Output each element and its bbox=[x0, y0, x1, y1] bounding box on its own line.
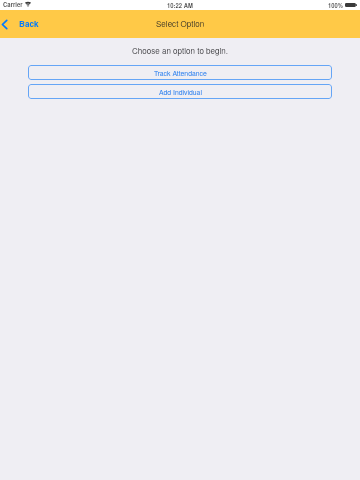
staticText: Choose an option to begin. bbox=[0, 45, 360, 57]
staticText: Track Attendance bbox=[154, 68, 207, 78]
staticText: Select Option bbox=[156, 18, 205, 30]
other: Back bbox=[2, 20, 7, 29]
staticText: Back bbox=[19, 18, 39, 30]
button[interactable]: Track Attendance bbox=[28, 65, 332, 80]
staticText: 100% bbox=[328, 1, 343, 9]
staticText: Carrier bbox=[3, 0, 23, 9]
button[interactable]: Add Individual bbox=[28, 84, 332, 99]
staticText: 10:22 AM bbox=[167, 1, 193, 9]
staticText: Add Individual bbox=[159, 87, 202, 97]
button[interactable]: Back bbox=[0, 14, 47, 34]
